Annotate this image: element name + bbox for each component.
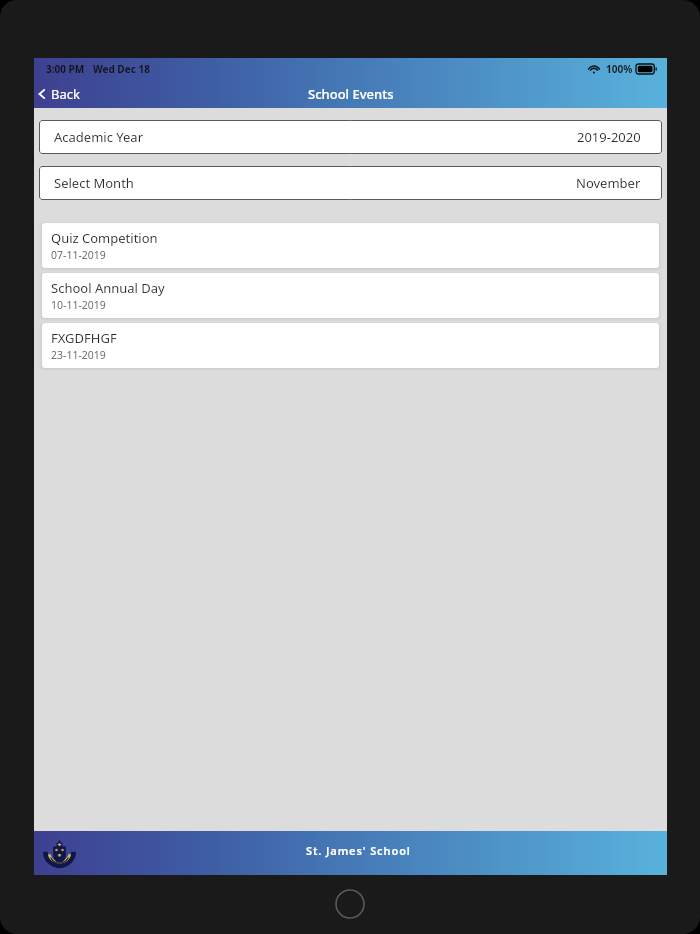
staticText: 07-11-2019 [51,248,106,262]
staticText: Wed Dec 18 [93,62,150,76]
staticText: 10-11-2019 [51,298,106,312]
button[interactable]: Select Month [39,166,662,200]
staticText: Select Month [54,174,134,192]
staticText: November [576,174,641,192]
staticText: Back [51,85,80,103]
button[interactable]: Academic Year [39,120,662,154]
staticText: Academic Year [54,128,143,146]
button[interactable]: FXGDFHGF [42,323,659,368]
button[interactable]: Back [35,79,80,108]
staticText: Quiz Competition [51,229,158,247]
staticText: School Events [308,85,394,103]
button[interactable]: Home [335,889,365,919]
staticText: FXGDFHGF [51,329,117,347]
button[interactable]: Quiz Competition [42,223,659,268]
staticText: 23-11-2019 [51,348,106,362]
staticText: 100% [606,62,633,76]
staticText: 3:00 PM [46,62,85,76]
staticText: 2019-2020 [577,128,641,146]
button[interactable]: School logo [44,838,75,869]
button[interactable]: School Annual Day [42,273,659,318]
staticText: School Annual Day [51,279,165,297]
staticText: St. James' School [306,843,411,858]
